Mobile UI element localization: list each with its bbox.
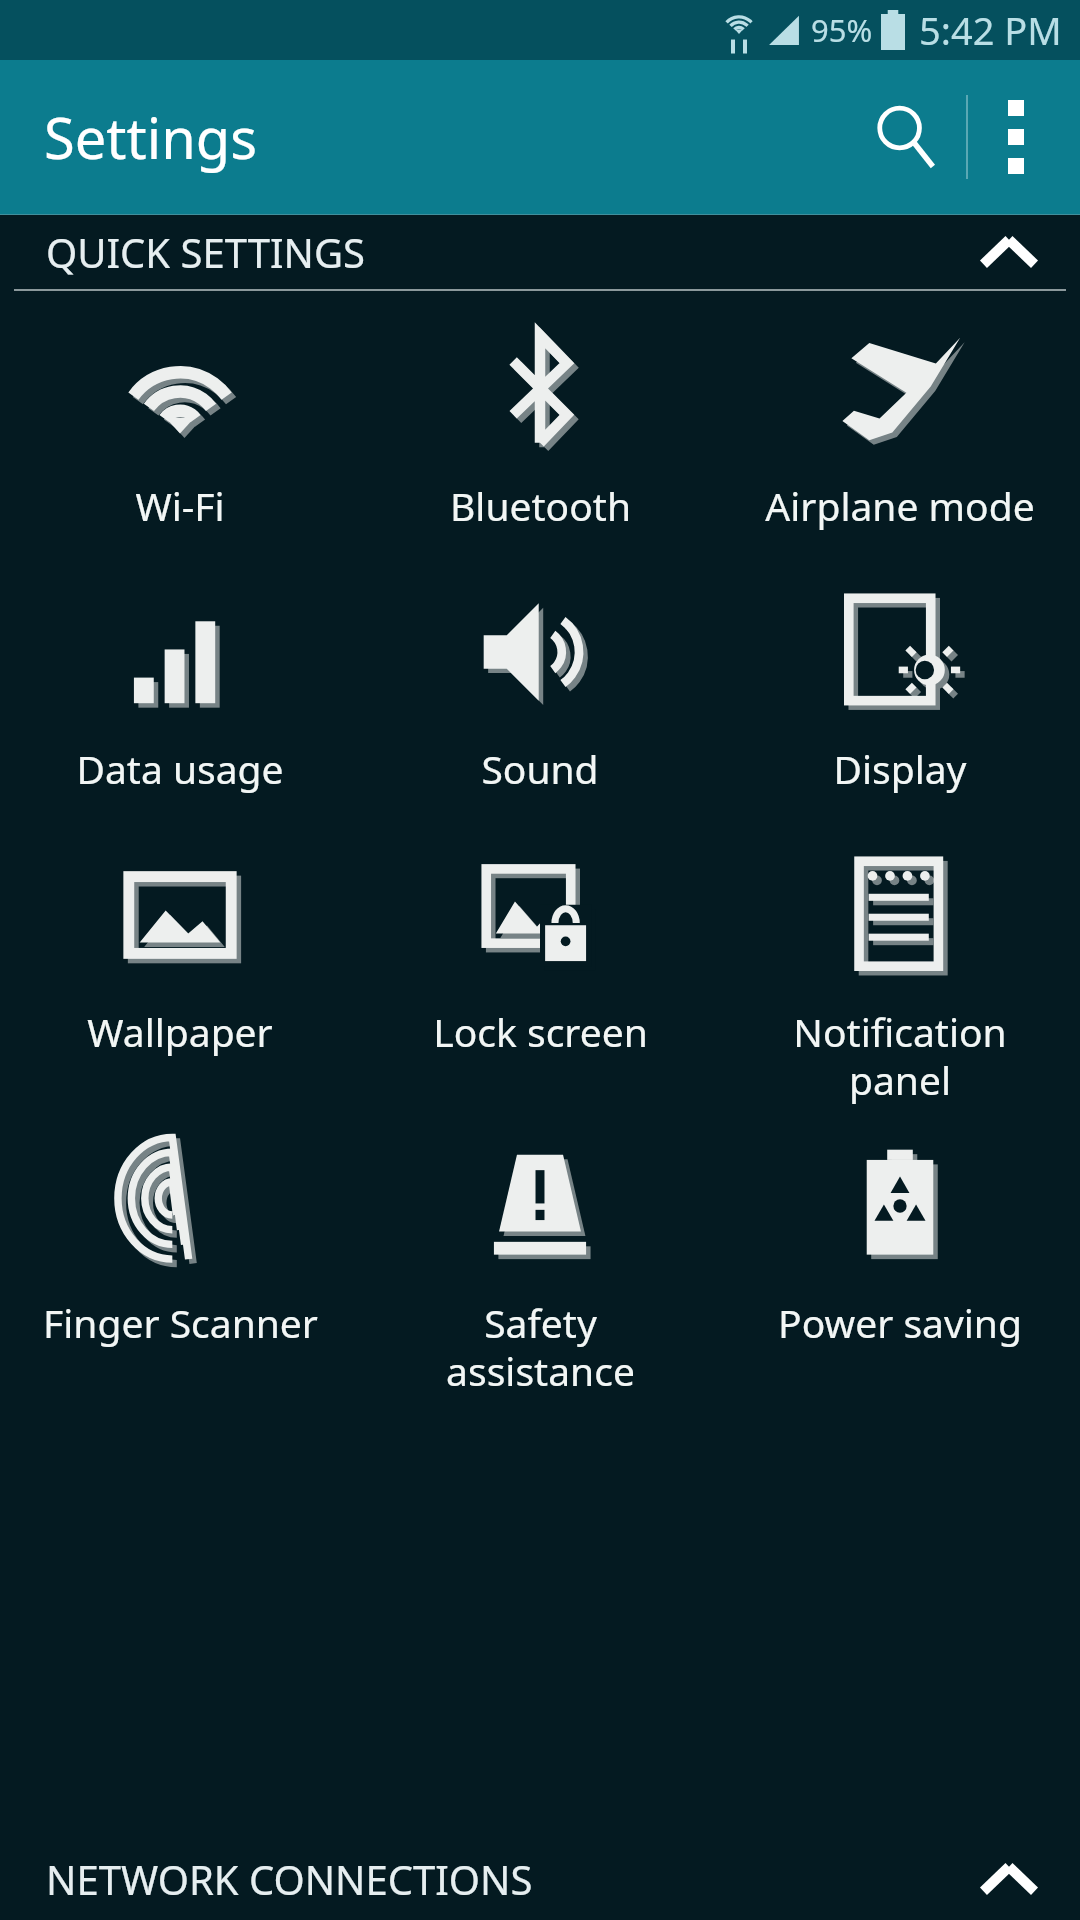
- staticText: Settings: [44, 99, 258, 175]
- button[interactable]: Data usage: [0, 588, 360, 795]
- button[interactable]: Display: [720, 588, 1080, 795]
- button[interactable]: Wallpaper: [0, 851, 360, 1058]
- staticText: QUICK SETTINGS: [46, 225, 365, 279]
- button[interactable]: Sound: [360, 588, 720, 795]
- button[interactable]: Lock screen: [360, 851, 720, 1058]
- button[interactable]: Airplane mode: [720, 325, 1080, 532]
- staticText: 5:42 PM: [919, 4, 1062, 56]
- staticText: Data usage: [76, 742, 284, 795]
- staticText: Safety assistance: [446, 1296, 635, 1397]
- button[interactable]: QUICK SETTINGS: [0, 215, 1080, 289]
- staticText: Wallpaper: [87, 1005, 273, 1058]
- button[interactable]: Finger Scanner: [0, 1142, 360, 1349]
- button[interactable]: Wi-Fi: [0, 325, 360, 532]
- button[interactable]: Safety assistance: [360, 1142, 720, 1397]
- button[interactable]: Bluetooth: [360, 325, 720, 532]
- button[interactable]: NETWORK CONNECTIONS: [0, 1842, 1080, 1916]
- staticText: Wi-Fi: [135, 479, 225, 532]
- button[interactable]: More options: [968, 60, 1064, 214]
- staticText: Display: [833, 742, 967, 795]
- staticText: Finger Scanner: [43, 1296, 318, 1349]
- staticText: Airplane mode: [765, 479, 1035, 532]
- button[interactable]: Power saving: [720, 1142, 1080, 1349]
- staticText: NETWORK CONNECTIONS: [46, 1852, 533, 1906]
- staticText: Notification panel: [793, 1005, 1007, 1106]
- staticText: Sound: [481, 742, 599, 795]
- staticText: Lock screen: [433, 1005, 648, 1058]
- staticText: Power saving: [778, 1296, 1022, 1349]
- button[interactable]: Search: [846, 60, 966, 214]
- button[interactable]: Notification panel: [720, 851, 1080, 1106]
- staticText: Bluetooth: [450, 479, 631, 532]
- staticText: 95%: [811, 9, 873, 51]
